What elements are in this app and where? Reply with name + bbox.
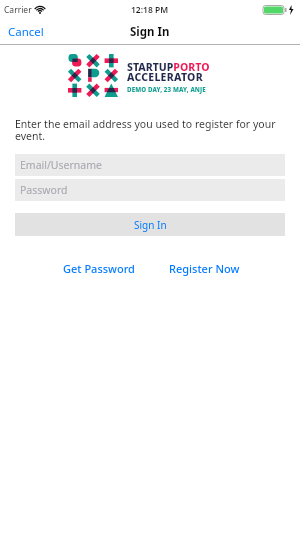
staticText: Email/Username bbox=[20, 158, 102, 172]
staticText: Sign In bbox=[134, 218, 167, 232]
button[interactable]: Register Now bbox=[169, 261, 240, 276]
staticText: Register Now bbox=[169, 261, 240, 276]
staticText: Carrier bbox=[4, 4, 32, 16]
button[interactable]: Email/Username bbox=[15, 154, 285, 176]
staticText: Sign In bbox=[130, 24, 170, 40]
button[interactable]: Sign In bbox=[15, 213, 285, 236]
staticText: Enter the email address you used to regi… bbox=[15, 117, 276, 143]
staticText: Cancel bbox=[8, 24, 44, 40]
button[interactable]: Password bbox=[15, 179, 285, 201]
button[interactable]: Cancel bbox=[8, 24, 44, 40]
button[interactable]: Get Password bbox=[63, 261, 135, 276]
staticText: 12:18 PM bbox=[131, 4, 169, 16]
staticText: Password bbox=[20, 183, 68, 197]
staticText: STARTUPPORTO ACCELERATOR DEMO DAY, 23 MA… bbox=[127, 60, 210, 94]
staticText: Get Password bbox=[63, 261, 135, 276]
